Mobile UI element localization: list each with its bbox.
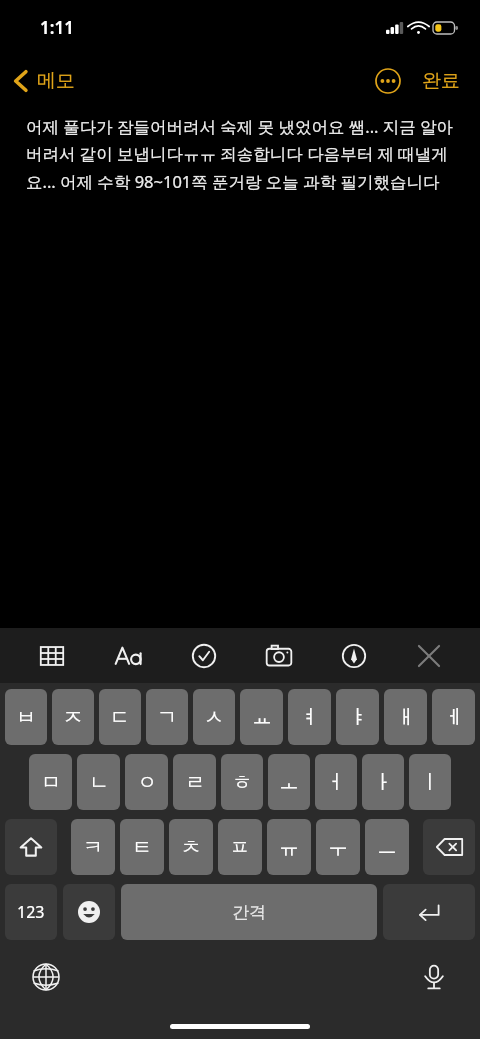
- staticText: ㅡ: [377, 835, 397, 860]
- staticText: 완료: [422, 69, 460, 93]
- button[interactable]: ㄴ: [77, 754, 120, 810]
- button[interactable]: ㅑ: [336, 689, 379, 745]
- button[interactable]: ㅔ: [432, 689, 475, 745]
- button[interactable]: Checklist: [166, 628, 241, 683]
- staticText: 123: [17, 901, 45, 923]
- button[interactable]: Shift: [5, 819, 57, 875]
- button[interactable]: Dictate: [412, 955, 456, 999]
- button[interactable]: ㅌ: [120, 819, 164, 875]
- button[interactable]: ㅋ: [71, 819, 115, 875]
- button[interactable]: 완료: [416, 61, 466, 101]
- button[interactable]: ㅎ: [221, 754, 263, 810]
- staticText: ㅛ: [252, 705, 272, 730]
- staticText: ㅌ: [132, 835, 152, 860]
- staticText: ㅇ: [137, 770, 157, 795]
- staticText: ㄹ: [185, 770, 205, 795]
- button[interactable]: 123: [5, 884, 57, 940]
- button[interactable]: ㅈ: [52, 689, 94, 745]
- button[interactable]: Delete: [423, 819, 475, 875]
- button[interactable]: ㅠ: [267, 819, 311, 875]
- button[interactable]: ㅛ: [240, 689, 283, 745]
- staticText: ㅣ: [420, 770, 440, 795]
- staticText: ㄱ: [157, 705, 177, 730]
- button[interactable]: ㅓ: [315, 754, 357, 810]
- button[interactable]: 간격: [121, 884, 377, 940]
- staticText: ㅈ: [63, 705, 83, 730]
- staticText: 메모: [37, 69, 75, 93]
- button[interactable]: Camera: [241, 628, 316, 683]
- button[interactable]: ㅊ: [169, 819, 213, 875]
- staticText: ㅋ: [83, 835, 103, 860]
- staticText: ㅠ: [279, 835, 299, 860]
- staticText: 간격: [232, 902, 266, 923]
- staticText: 어제 풀다가 잠들어버려서 숙제 못 냈었어요 쌤... 지금 알아버려서 같이…: [26, 115, 456, 193]
- button[interactable]: ㅏ: [362, 754, 404, 810]
- button[interactable]: ㅡ: [365, 819, 409, 875]
- button[interactable]: ㄷ: [99, 689, 141, 745]
- staticText: 1:11: [40, 16, 74, 39]
- button[interactable]: ㅂ: [5, 689, 47, 745]
- button[interactable]: ㄱ: [146, 689, 188, 745]
- staticText: ㅅ: [204, 705, 224, 730]
- button[interactable]: Markup: [316, 628, 391, 683]
- staticText: ㅕ: [300, 705, 320, 730]
- button[interactable]: Close keyboard: [391, 628, 466, 683]
- staticText: ㄷ: [110, 705, 130, 730]
- staticText: ㅑ: [348, 705, 368, 730]
- staticText: ㅍ: [230, 835, 250, 860]
- button[interactable]: ㅣ: [409, 754, 451, 810]
- staticText: ㅗ: [279, 770, 299, 795]
- staticText: ㅓ: [326, 770, 346, 795]
- button[interactable]: ㅕ: [288, 689, 331, 745]
- button[interactable]: ㅍ: [218, 819, 262, 875]
- staticText: ㅊ: [181, 835, 201, 860]
- staticText: ㅔ: [444, 705, 464, 730]
- button[interactable]: Emoji: [63, 884, 115, 940]
- staticText: ㅎ: [232, 770, 252, 795]
- button[interactable]: ㅜ: [316, 819, 360, 875]
- staticText: ㅜ: [328, 835, 348, 860]
- button[interactable]: ㅅ: [193, 689, 235, 745]
- button[interactable]: Return: [383, 884, 475, 940]
- button[interactable]: More options: [368, 61, 408, 101]
- button[interactable]: 메모: [0, 63, 85, 99]
- staticText: ㄴ: [89, 770, 109, 795]
- button[interactable]: Table: [14, 628, 90, 683]
- staticText: ㅁ: [41, 770, 61, 795]
- button[interactable]: ㅁ: [29, 754, 72, 810]
- button[interactable]: Format text: [90, 628, 166, 683]
- button[interactable]: ㅇ: [125, 754, 168, 810]
- button[interactable]: ㄹ: [173, 754, 216, 810]
- button[interactable]: ㅐ: [384, 689, 427, 745]
- button[interactable]: Change keyboard: [24, 955, 68, 999]
- staticText: ㅂ: [16, 705, 36, 730]
- button[interactable]: ㅗ: [268, 754, 310, 810]
- staticText: ㅐ: [396, 705, 416, 730]
- staticText: ㅏ: [373, 770, 393, 795]
